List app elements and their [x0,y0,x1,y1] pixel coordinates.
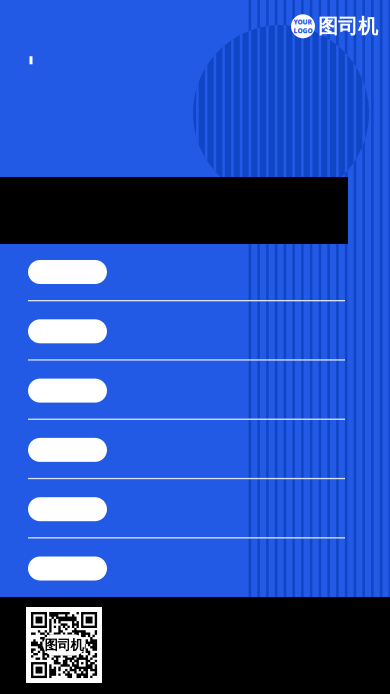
button[interactable] [0,556,345,601]
button[interactable] [0,438,345,483]
button[interactable] [0,379,345,424]
staticText: YOUR [293,17,312,26]
button[interactable]: 扫码下载 [26,607,102,683]
button[interactable] [0,319,345,364]
button[interactable] [0,260,345,305]
button[interactable]: 图司机 [291,14,378,39]
button[interactable] [0,497,345,542]
staticText: LOGO [293,26,312,35]
staticText: 图司机 [44,637,83,653]
staticText: 图司机 [318,14,378,39]
